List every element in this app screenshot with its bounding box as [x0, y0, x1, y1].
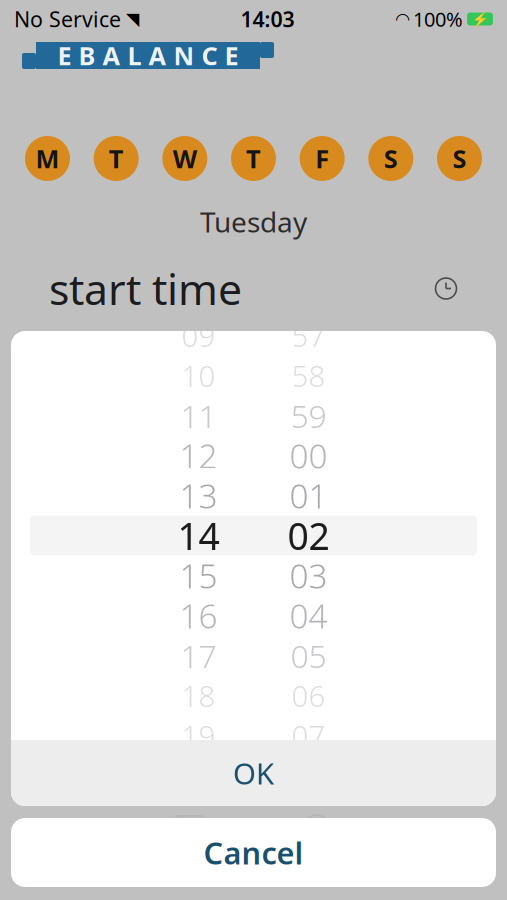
staticText: S	[384, 142, 398, 175]
staticText: 05	[290, 634, 326, 677]
staticText: ◠	[396, 9, 409, 29]
staticText: start time	[49, 260, 242, 317]
button[interactable]: OK	[11, 740, 496, 806]
staticText: 100%	[413, 6, 463, 32]
staticText: 15	[179, 553, 217, 598]
staticText: 13	[179, 473, 217, 518]
staticText: T	[109, 142, 124, 175]
staticText: ⚡	[471, 11, 488, 27]
button[interactable]: M	[25, 136, 70, 181]
staticText: T	[246, 142, 261, 175]
staticText: 18	[181, 676, 215, 715]
staticText: 11	[180, 394, 216, 437]
button[interactable]: T	[94, 136, 139, 181]
staticText: 01	[289, 473, 327, 518]
staticText: 59	[290, 394, 326, 437]
staticText: 57	[291, 316, 325, 355]
staticText: OK	[233, 753, 274, 792]
button[interactable]: F	[300, 136, 345, 181]
staticText: 19	[181, 716, 215, 755]
staticText: Cancel	[203, 832, 303, 873]
staticText: E B A L A N C E	[57, 39, 238, 72]
staticText: 09	[181, 316, 215, 355]
button[interactable]: Cancel	[11, 818, 496, 887]
staticText: 00	[289, 433, 327, 478]
staticText: 16	[179, 593, 217, 638]
staticText: 04	[289, 593, 327, 638]
button[interactable]: T	[231, 136, 276, 181]
staticText: ◥	[126, 9, 139, 29]
staticText: 02	[287, 511, 329, 560]
staticText: 58	[291, 356, 325, 395]
staticText: 10	[181, 356, 215, 395]
staticText: 14:03	[240, 5, 294, 33]
staticText: 06	[291, 676, 325, 715]
staticText: F	[315, 142, 329, 175]
staticText: Tuesday	[200, 203, 307, 240]
button[interactable]: W	[162, 136, 207, 181]
button[interactable]: S	[368, 136, 413, 181]
staticText: W	[173, 142, 197, 175]
staticText: S	[452, 142, 466, 175]
staticText: 07	[291, 716, 325, 755]
staticText: 17	[180, 634, 216, 677]
staticText: 03	[289, 553, 327, 598]
button[interactable]: S	[437, 136, 482, 181]
staticText: 14	[177, 511, 219, 560]
staticText: M	[35, 142, 59, 175]
staticText: No Service	[14, 5, 121, 33]
staticText: 12	[179, 433, 217, 478]
